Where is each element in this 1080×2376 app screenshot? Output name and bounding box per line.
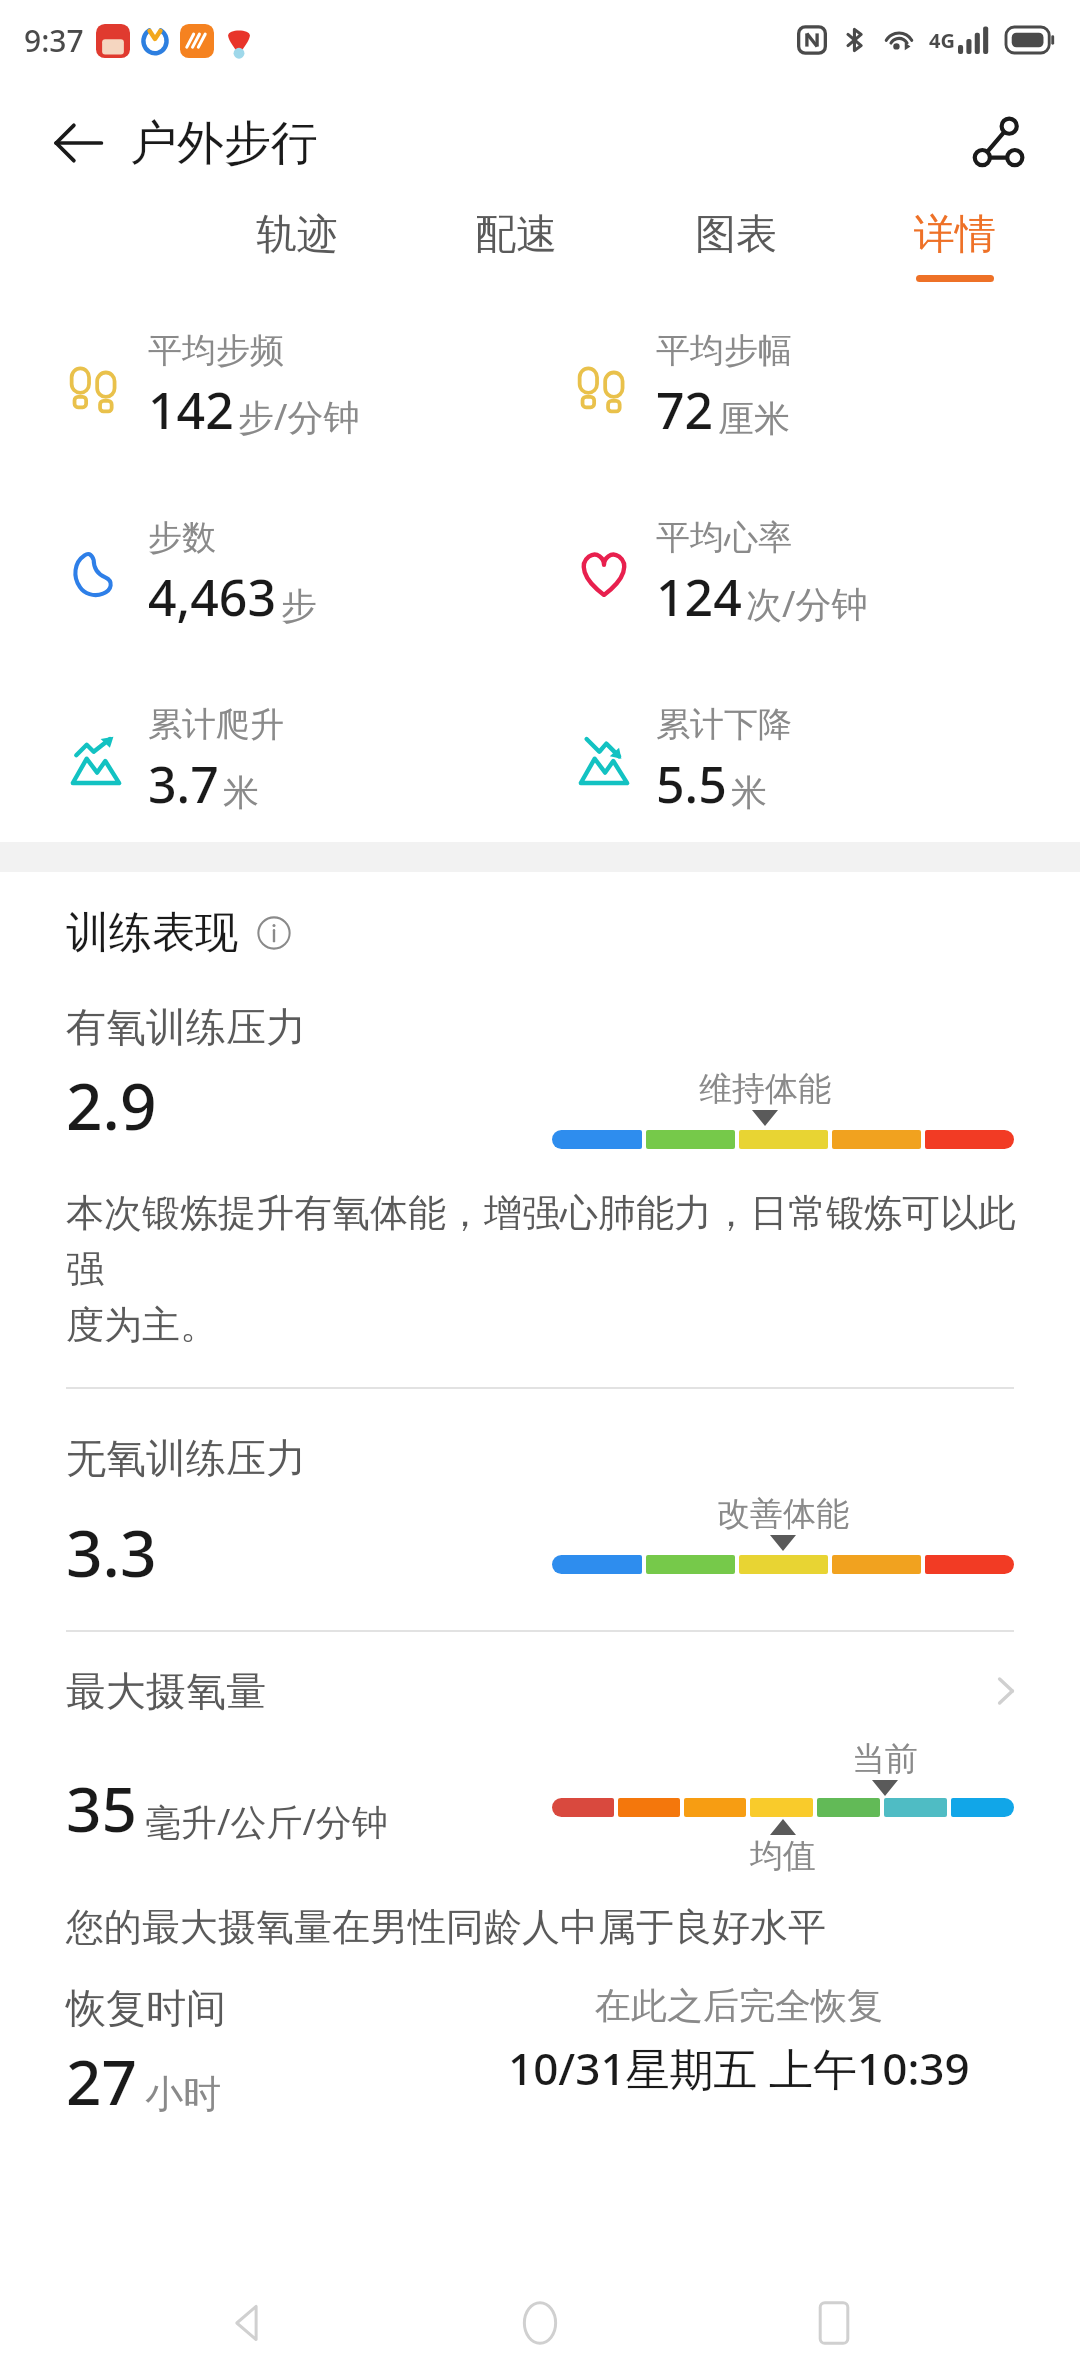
staticText: 最大摄氧量 xyxy=(66,1666,266,1716)
staticText: 142 xyxy=(148,376,234,444)
button[interactable]: Home xyxy=(492,2275,588,2371)
staticText: 训练表现 xyxy=(66,906,238,960)
staticText: 步/分钟 xyxy=(238,392,360,441)
staticText: 图表 xyxy=(695,209,777,261)
staticText: 户外步行 xyxy=(130,114,318,173)
staticText: 恢复时间 xyxy=(66,1983,226,2033)
staticText: 配速 xyxy=(475,209,557,261)
staticText: 累计爬升 xyxy=(148,703,284,746)
button[interactable]: 图表 xyxy=(689,205,783,265)
staticText: 平均步幅 xyxy=(656,329,792,372)
staticText: 72 xyxy=(656,376,714,444)
staticText: 平均心率 xyxy=(656,516,792,559)
staticText: 均值 xyxy=(703,1835,863,1877)
staticText: 9:37 xyxy=(24,20,84,61)
staticText: 您的最大摄氧量在男性同龄人中属于良好水平 xyxy=(66,1903,826,1951)
staticText: 平均步频 xyxy=(148,329,284,372)
staticText: 35 xyxy=(66,1766,137,1850)
button[interactable]: 平均步幅 xyxy=(572,329,1080,444)
staticText: 本次锻炼提升有氧体能，增强心肺能力，日常锻炼可以此强 度为主。 xyxy=(66,1189,1040,1349)
staticText: 米 xyxy=(731,770,767,815)
button[interactable]: 轨迹 xyxy=(250,205,344,265)
staticText: 当前 xyxy=(805,1738,965,1780)
button[interactable]: 累计下降 xyxy=(572,703,1080,818)
staticText: 124 xyxy=(656,563,742,631)
button[interactable]: Recents xyxy=(786,2275,882,2371)
staticText: 次/分钟 xyxy=(746,579,868,628)
staticText: 维持体能 xyxy=(685,1068,845,1110)
staticText: 累计下降 xyxy=(656,703,792,746)
staticText: 小时 xyxy=(145,2070,221,2118)
button[interactable]: 平均心率 xyxy=(572,516,1080,631)
button[interactable]: 配速 xyxy=(469,205,563,265)
staticText: 10/31星期五 上午10:39 xyxy=(508,2038,970,2098)
staticText: 厘米 xyxy=(718,396,790,441)
staticText: 4,463 xyxy=(148,563,277,631)
staticText: 在此之后完全恢复 xyxy=(595,1983,883,2028)
button[interactable]: Share xyxy=(962,107,1034,179)
staticText: 5.5 xyxy=(656,750,727,818)
button[interactable]: 详情 xyxy=(908,205,1002,286)
staticText: 2.9 xyxy=(66,1062,157,1149)
staticText: 步 xyxy=(281,583,317,628)
staticText: 毫升/公斤/分钟 xyxy=(145,1797,388,1846)
button[interactable]: 最大摄氧量 xyxy=(0,1666,1080,1716)
button[interactable]: 平均步频 xyxy=(64,329,540,444)
button[interactable]: 累计爬升 xyxy=(64,703,540,818)
staticText: 步数 xyxy=(148,516,216,559)
staticText: 3.3 xyxy=(66,1509,157,1596)
staticText: 4G xyxy=(929,27,955,54)
staticText: 米 xyxy=(223,770,259,815)
staticText: 27 xyxy=(66,2039,137,2123)
staticText: 轨迹 xyxy=(256,209,338,261)
staticText: 改善体能 xyxy=(703,1493,863,1535)
button[interactable]: Info xyxy=(252,911,296,955)
staticText: 无氧训练压力 xyxy=(66,1433,306,1483)
staticText: 详情 xyxy=(914,209,996,261)
button[interactable]: 步数 xyxy=(64,516,540,631)
staticText: 有氧训练压力 xyxy=(66,1002,306,1052)
button[interactable]: Back xyxy=(46,111,110,175)
button[interactable]: Back xyxy=(198,2275,294,2371)
staticText: 3.7 xyxy=(148,750,219,818)
